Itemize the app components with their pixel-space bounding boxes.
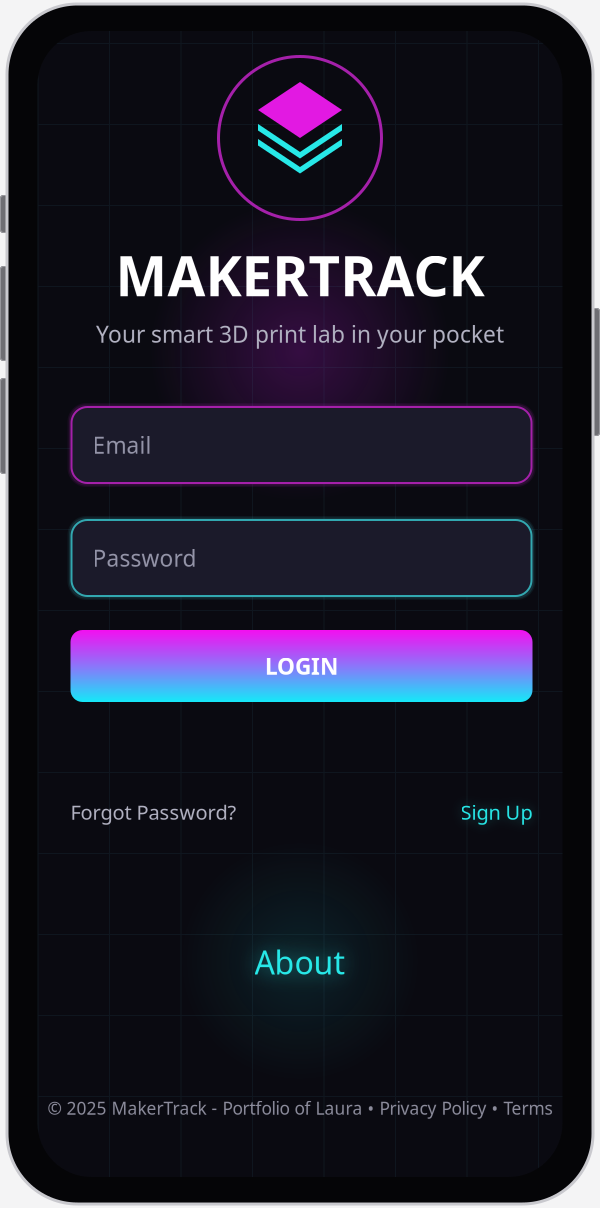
staticText: © 2025 MakerTrack - Portfolio of Laura •…: [47, 1096, 552, 1119]
button[interactable]: Email: [70, 406, 532, 484]
staticText: Email: [92, 430, 151, 460]
staticText: Sign Up: [460, 799, 532, 825]
button[interactable]: LOGIN: [70, 630, 532, 702]
button[interactable]: About: [37, 944, 562, 980]
button[interactable]: Forgot Password?: [70, 799, 236, 825]
staticText: Password: [92, 543, 196, 573]
button[interactable]: Password: [70, 519, 532, 597]
staticText: About: [254, 941, 345, 983]
staticText: Forgot Password?: [70, 799, 236, 825]
staticText: Your smart 3D print lab in your pocket: [96, 319, 504, 349]
staticText: MAKERTRACK: [115, 239, 484, 311]
staticText: LOGIN: [265, 651, 338, 681]
button[interactable]: Sign Up: [460, 799, 532, 825]
